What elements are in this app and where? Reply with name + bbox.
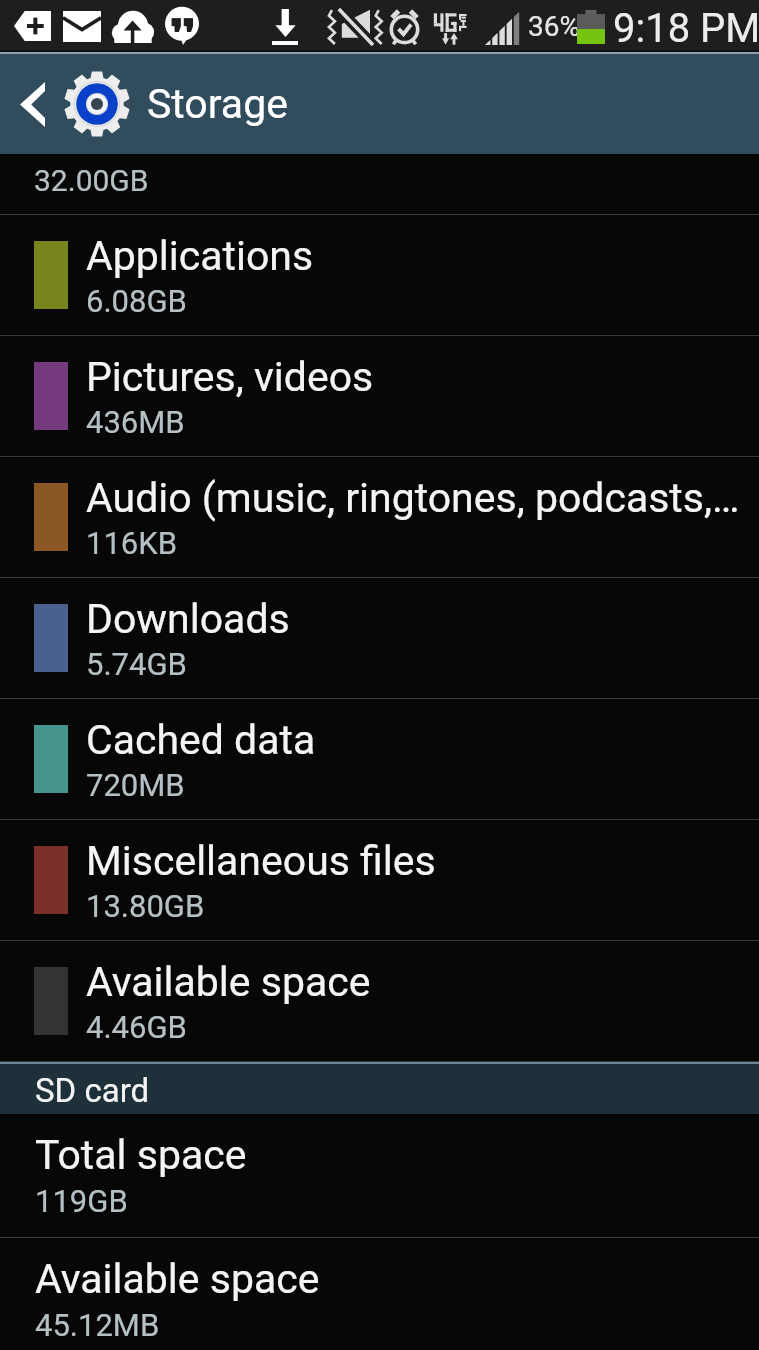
- staticText: Miscellaneous files: [86, 837, 436, 885]
- staticText: 13.80GB: [86, 888, 205, 924]
- staticText: SD card: [35, 1071, 150, 1110]
- staticText: 36%: [528, 10, 580, 43]
- button[interactable]: Cached data: [0, 699, 759, 819]
- button[interactable]: Miscellaneous files: [0, 820, 759, 940]
- button[interactable]: Audio (music, ringtones, podcasts,…: [0, 457, 759, 577]
- staticText: 436MB: [86, 404, 185, 440]
- staticText: Available space: [86, 958, 371, 1006]
- button[interactable]: Available space: [0, 941, 759, 1061]
- button[interactable]: Navigate up: [0, 54, 759, 154]
- button[interactable]: Total space: [0, 1114, 759, 1237]
- staticText: 116KB: [86, 525, 178, 561]
- button[interactable]: Navigate up: [0, 54, 64, 154]
- staticText: 720MB: [86, 767, 185, 803]
- staticText: 9:18 PM: [613, 5, 759, 52]
- staticText: 5.74GB: [86, 646, 187, 682]
- staticText: Storage: [147, 80, 288, 128]
- staticText: 119GB: [35, 1183, 128, 1219]
- staticText: Cached data: [86, 716, 316, 764]
- staticText: Audio (music, ringtones, podcasts,…: [86, 474, 740, 522]
- staticText: Downloads: [86, 595, 290, 643]
- button[interactable]: Applications: [0, 215, 759, 335]
- staticText: Applications: [86, 232, 314, 280]
- staticText: Total space: [35, 1131, 247, 1179]
- staticText: Pictures, videos: [86, 353, 374, 401]
- button[interactable]: Pictures, videos: [0, 336, 759, 456]
- staticText: 45.12MB: [35, 1307, 160, 1343]
- staticText: 32.00GB: [34, 163, 149, 198]
- button[interactable]: Available space: [0, 1238, 759, 1350]
- button[interactable]: Downloads: [0, 578, 759, 698]
- staticText: 6.08GB: [86, 283, 187, 319]
- button[interactable]: 32.00GB: [0, 154, 759, 214]
- staticText: 4.46GB: [86, 1009, 187, 1045]
- staticText: Available space: [35, 1255, 320, 1303]
